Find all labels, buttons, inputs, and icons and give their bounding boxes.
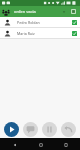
- button[interactable]: More options: [68, 6, 79, 17]
- staticText: Pedro Roldan: [17, 20, 69, 25]
- button[interactable]: Maria Ruiz: [0, 28, 80, 38]
- button[interactable]: Pause: [42, 122, 57, 137]
- staticText: Maria Ruiz: [17, 31, 69, 36]
- button[interactable]: Recent apps: [61, 140, 70, 149]
- button[interactable]: Start: [4, 122, 19, 137]
- button[interactable]: Dropdown: [59, 7, 68, 16]
- button[interactable]: Home: [36, 140, 45, 149]
- button[interactable]: Selected: [69, 17, 79, 27]
- button[interactable]: Selected: [69, 28, 79, 38]
- button[interactable]: Pedro Roldan: [0, 17, 80, 27]
- button[interactable]: Comment: [23, 122, 38, 137]
- staticText: orden vacia: [14, 9, 59, 14]
- button[interactable]: Back: [10, 140, 19, 149]
- button[interactable]: Group: [0, 6, 11, 17]
- button[interactable]: Reply: [61, 122, 76, 137]
